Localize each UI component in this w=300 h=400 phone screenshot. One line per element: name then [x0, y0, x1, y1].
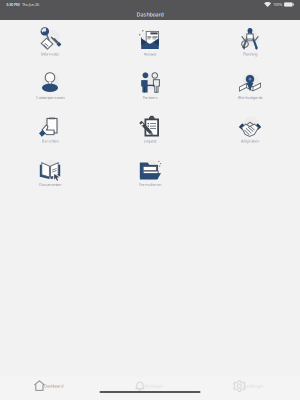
- staticText: Afspraken: [241, 138, 259, 144]
- button[interactable]: Berichten: [0, 113, 100, 156]
- button[interactable]: Afspraken: [200, 113, 300, 156]
- button[interactable]: Dashboard: [0, 379, 100, 393]
- staticText: Berichten: [41, 138, 58, 144]
- button[interactable]: Planning: [200, 26, 300, 69]
- staticText: Thu Jun 26: [20, 2, 39, 7]
- staticText: Nieuws: [143, 51, 156, 57]
- staticText: Enquete: [143, 138, 156, 144]
- button[interactable]: Informatie: [0, 26, 100, 69]
- button[interactable]: Instellingen: [200, 379, 300, 393]
- staticText: Formulieren: [139, 182, 161, 187]
- button[interactable]: Formulieren: [100, 156, 200, 200]
- staticText: Documenten: [39, 182, 61, 187]
- staticText: Dashboard: [136, 11, 163, 18]
- staticText: Partners: [142, 95, 157, 100]
- staticText: Planning: [243, 51, 257, 57]
- staticText: Informatie: [41, 51, 59, 57]
- button[interactable]: Partners: [100, 69, 200, 113]
- button[interactable]: Meldingen: [100, 379, 200, 393]
- staticText: Instellingen: [244, 383, 263, 389]
- staticText: Meldingen: [145, 383, 163, 389]
- button[interactable]: Werkvolgorde: [200, 69, 300, 113]
- button[interactable]: Documenten: [0, 156, 100, 200]
- button[interactable]: Enquete: [100, 113, 200, 156]
- staticText: 3:30 PM: [6, 2, 20, 7]
- staticText: Werkvolgorde: [237, 95, 262, 100]
- staticText: Contactpersonen: [35, 95, 64, 100]
- staticText: 100%: [273, 2, 282, 7]
- button[interactable]: Nieuws: [100, 26, 200, 69]
- button[interactable]: Contactpersonen: [0, 69, 100, 113]
- staticText: Dashboard: [44, 383, 63, 389]
